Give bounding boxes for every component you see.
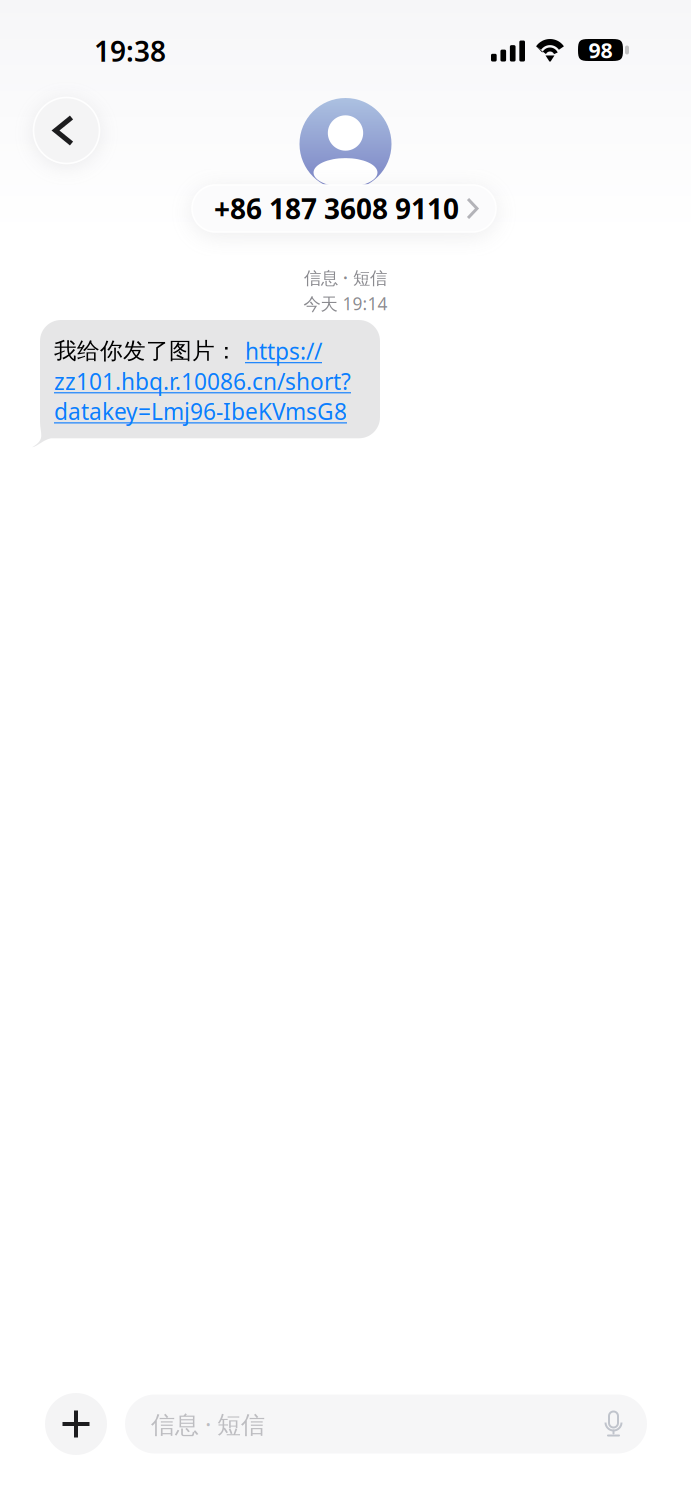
staticText: 19:38	[94, 32, 166, 70]
staticText: 信息 · 短信	[151, 1408, 265, 1440]
staticText: 98	[588, 36, 612, 64]
button[interactable]: Back	[33, 97, 100, 164]
staticText: https://	[245, 336, 322, 366]
button[interactable]: Attach	[45, 1393, 107, 1455]
staticText: 信息 · 短信	[304, 266, 387, 289]
staticText: 我给你发了图片：	[54, 337, 245, 365]
staticText: 今天 19:14	[303, 292, 387, 315]
staticText: +86 187 3608 9110	[214, 190, 459, 227]
staticText: zz101.hbq.r.10086.cn/short?	[54, 366, 351, 396]
staticText: datakey=Lmj96-IbeKVmsG8	[54, 396, 347, 426]
button[interactable]: Dictate	[605, 1411, 622, 1436]
button[interactable]: +86 187 3608 9110	[192, 185, 496, 232]
